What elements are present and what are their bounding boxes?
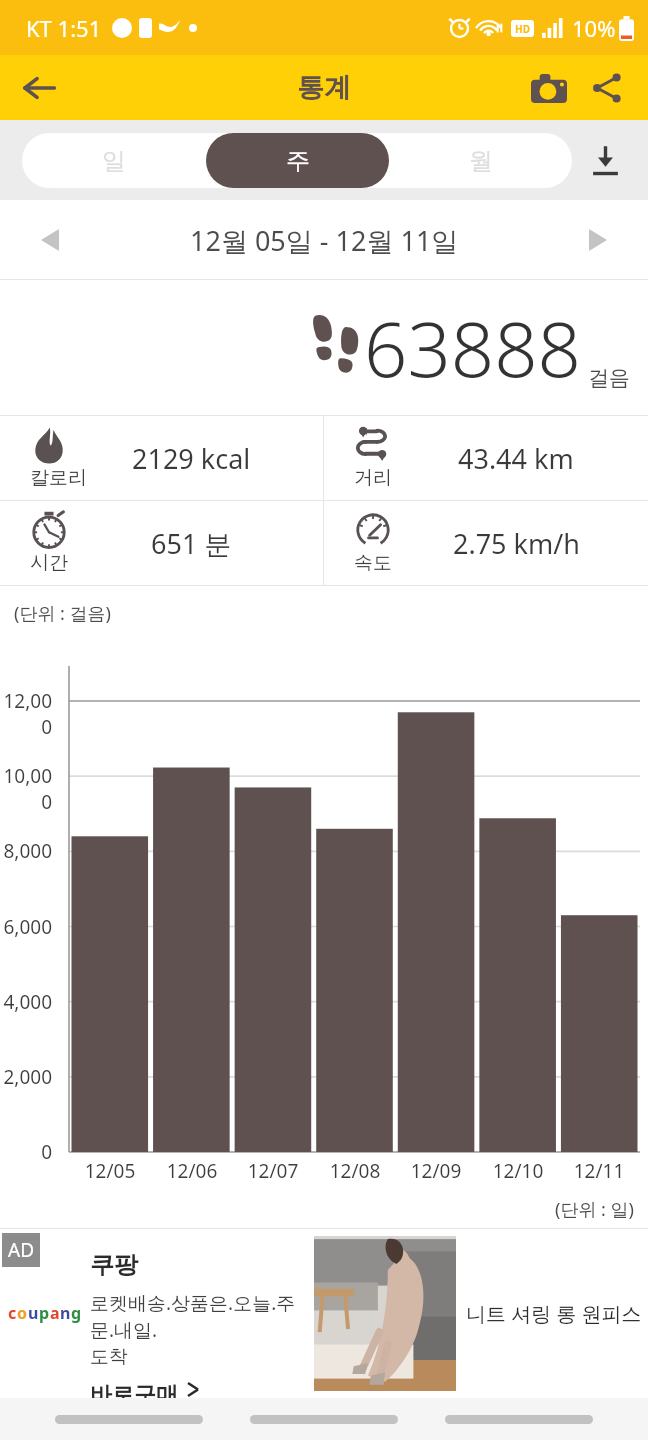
staticText: AD: [8, 1237, 35, 1263]
button[interactable]: 거리: [324, 416, 648, 500]
staticText: 월: [469, 146, 493, 176]
staticText: 칼로리: [30, 466, 87, 490]
staticText: 주: [286, 146, 310, 176]
staticText: 6,000: [0, 914, 52, 940]
staticText: 바로구매: [90, 1381, 178, 1398]
staticText: c: [8, 1302, 17, 1324]
staticText: 12/10: [477, 1158, 559, 1184]
staticText: 니트 셔링 롱 원피스: [466, 1300, 642, 1327]
staticText: 12/05: [69, 1158, 151, 1184]
button[interactable]: Next week: [572, 214, 624, 266]
staticText: 속도: [354, 551, 392, 575]
staticText: HD: [515, 22, 530, 36]
staticText: 8,000: [0, 838, 52, 864]
button[interactable]: Home: [250, 1404, 398, 1434]
button[interactable]: Back: [445, 1404, 593, 1434]
button[interactable]: Camera: [520, 59, 578, 117]
staticText: u: [28, 1302, 39, 1324]
staticText: KT 1:51: [26, 13, 102, 43]
staticText: 10%: [572, 13, 616, 43]
staticText: 12/09: [395, 1158, 477, 1184]
staticText: a: [50, 1302, 60, 1324]
staticText: 10,000: [0, 763, 52, 815]
staticText: 12/11: [558, 1158, 640, 1184]
staticText: 12/06: [151, 1158, 233, 1184]
staticText: 로켓배송.상품은.오늘.주문.내일. 도착: [90, 1290, 310, 1369]
staticText: (단위 : 걸음): [14, 601, 111, 626]
button[interactable]: Recents: [55, 1404, 203, 1434]
staticText: 0: [0, 1139, 52, 1165]
button[interactable]: 칼로리: [0, 416, 323, 500]
button[interactable]: Back: [10, 59, 68, 117]
button[interactable]: 일: [22, 133, 206, 188]
staticText: 4,000: [0, 989, 52, 1015]
staticText: 2.75 km/h: [453, 525, 580, 562]
staticText: g: [71, 1302, 82, 1324]
staticText: o: [17, 1302, 28, 1324]
staticText: 12/08: [314, 1158, 396, 1184]
button[interactable]: c: [0, 1228, 648, 1398]
staticText: 43.44 km: [458, 440, 574, 477]
staticText: 12,000: [0, 688, 52, 740]
button[interactable]: 속도: [324, 501, 648, 585]
button[interactable]: 월: [389, 133, 572, 188]
staticText: 일: [102, 146, 126, 176]
staticText: 12/07: [232, 1158, 314, 1184]
staticText: 쿠팡: [90, 1250, 138, 1280]
staticText: 통계: [297, 71, 351, 105]
button[interactable]: Share: [578, 59, 636, 117]
staticText: p: [39, 1302, 50, 1324]
staticText: 12월 05일 - 12월 11일: [190, 222, 459, 259]
staticText: 651 분: [151, 525, 232, 562]
staticText: 2129 kcal: [132, 440, 251, 477]
staticText: 2,000: [0, 1064, 52, 1090]
button[interactable]: 시간: [0, 501, 323, 585]
staticText: (단위 : 일): [555, 1197, 634, 1222]
button[interactable]: Previous week: [24, 214, 76, 266]
button[interactable]: 주: [206, 133, 389, 188]
staticText: 거리: [354, 466, 392, 490]
staticText: 63888: [364, 296, 581, 400]
button[interactable]: Download: [572, 127, 638, 193]
staticText: 시간: [30, 551, 68, 575]
staticText: n: [60, 1302, 71, 1324]
staticText: 걸음: [588, 365, 630, 391]
